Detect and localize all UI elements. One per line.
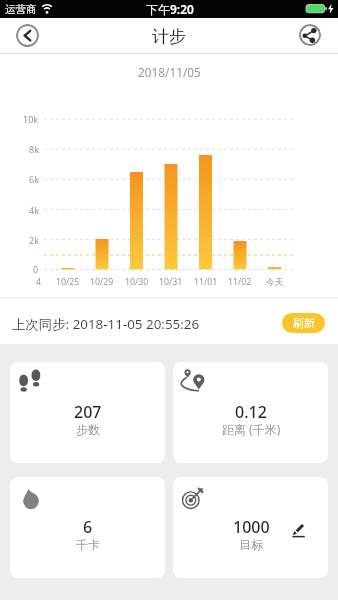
staticText: 计步	[152, 26, 186, 47]
staticText: 10/25	[56, 276, 80, 288]
staticText: 上次同步: 2018-11-05 20:55:26	[12, 315, 200, 333]
staticText: 步数	[76, 422, 100, 437]
staticText: 下午9:20	[146, 1, 194, 17]
staticText: 目标	[239, 537, 263, 552]
staticText: 2k	[29, 234, 39, 246]
staticText: 10k	[23, 113, 39, 125]
staticText: 千卡	[76, 537, 100, 552]
staticText: 11/02	[228, 276, 252, 288]
staticText: 刷新	[293, 316, 315, 330]
staticText: 1000	[233, 516, 270, 538]
staticText: 10/30	[125, 276, 149, 288]
button[interactable]	[173, 362, 328, 463]
button[interactable]	[173, 477, 328, 578]
staticText: 6	[83, 516, 93, 538]
button[interactable]	[16, 24, 39, 47]
staticText: 0.12	[235, 401, 267, 423]
staticText: 0	[33, 263, 39, 275]
staticText: 207	[74, 401, 102, 423]
button[interactable]	[299, 24, 321, 46]
button[interactable]: 刷新	[282, 313, 325, 333]
button[interactable]	[10, 477, 165, 578]
staticText: 10/29	[90, 276, 114, 288]
staticText: 4k	[29, 204, 39, 216]
staticText: 11/01	[194, 276, 218, 288]
staticText: 6k	[29, 173, 39, 185]
staticText: 10/31	[159, 276, 183, 288]
staticText: 8k	[29, 143, 39, 155]
staticText: 距离 (千米)	[222, 421, 281, 437]
button[interactable]	[10, 362, 165, 463]
staticText: 今天	[266, 277, 284, 288]
staticText: 2018/11/05	[138, 64, 201, 80]
staticText: 运营商	[5, 3, 37, 16]
staticText: 4	[36, 276, 42, 288]
